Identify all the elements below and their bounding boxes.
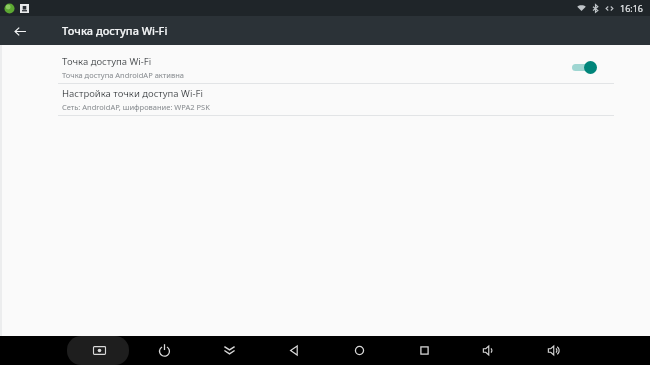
button[interactable]: Точка доступа Wi-Fi: [0, 51, 650, 83]
staticText: Точка доступа Wi-Fi: [62, 23, 168, 38]
staticText: Точка доступа Wi-Fi: [62, 55, 152, 68]
staticText: Сеть: AndroidAP, шифрование: WPA2 PSK: [62, 102, 210, 112]
button[interactable]: Wi-Fi hotspot toggle: [568, 57, 602, 77]
staticText: 16:16: [620, 2, 644, 14]
button[interactable]: Power: [132, 336, 197, 365]
staticText: Точка доступа AndroidAP активна: [62, 70, 184, 80]
button[interactable]: Screenshot: [67, 336, 132, 365]
button[interactable]: Volume down: [457, 336, 522, 365]
staticText: Настройка точки доступа Wi-Fi: [62, 87, 203, 100]
button[interactable]: Expand: [197, 336, 262, 365]
button[interactable]: Recents: [392, 336, 457, 365]
button[interactable]: Настройка точки доступа Wi-Fi: [0, 84, 650, 115]
button[interactable]: Back: [262, 336, 327, 365]
button[interactable]: Back: [8, 19, 32, 43]
button[interactable]: Home: [327, 336, 392, 365]
button[interactable]: Volume up: [522, 336, 587, 365]
